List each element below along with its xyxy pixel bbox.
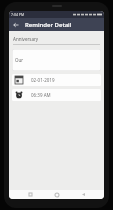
button[interactable]: Pick time bbox=[12, 89, 101, 101]
staticText: 02-01-2019 bbox=[31, 77, 55, 83]
button[interactable]: Home bbox=[51, 190, 63, 199]
staticText: Our bbox=[15, 57, 24, 63]
button[interactable]: Our bbox=[12, 49, 101, 71]
button[interactable]: Back bbox=[77, 190, 89, 199]
staticText: Anniversary bbox=[13, 36, 39, 42]
staticText: 7:04 PM bbox=[11, 12, 25, 17]
button[interactable]: Recents bbox=[24, 190, 36, 199]
staticText: Reminder Detail bbox=[25, 21, 72, 29]
button[interactable]: Back bbox=[9, 18, 22, 31]
button[interactable]: Pick date bbox=[12, 74, 101, 86]
staticText: 06:39 AM bbox=[31, 92, 51, 98]
